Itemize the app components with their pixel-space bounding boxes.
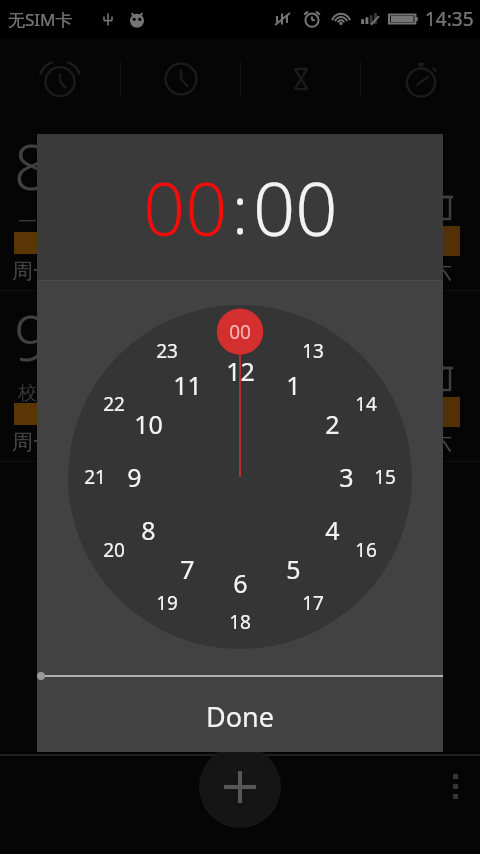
staticText: 18 [229,609,251,635]
staticText: 14:35 [425,6,474,32]
staticText: 9 [127,460,142,494]
button[interactable]: Clock [121,38,240,120]
staticText: 6 [233,566,248,600]
staticText: 15 [374,464,396,490]
button[interactable]: Done [37,680,443,752]
staticText: 1 [286,368,301,402]
button[interactable]: More options [447,768,464,805]
staticText: 11 [173,368,202,402]
button[interactable]: 9 [0,291,480,461]
staticText: 14 [355,391,377,417]
button[interactable]: 00 [253,157,338,258]
button[interactable]: Alarm [0,38,120,120]
staticText: 2 [325,407,340,441]
staticText: 一 [18,210,37,234]
staticText: 00 [229,319,251,345]
staticText: 校 [18,381,37,405]
staticText: : [232,163,249,253]
staticText: 4 [325,513,340,547]
staticText: 7 [180,552,195,586]
staticText: 5 [286,552,301,586]
button[interactable]: 8 [0,120,480,290]
staticText: 19 [156,590,178,616]
staticText: 16 [355,537,377,563]
staticText: Done [206,698,274,735]
staticText: 21 [84,464,106,490]
button[interactable]: Stopwatch [361,38,480,120]
staticText: 13 [302,338,324,364]
staticText: 23 [156,338,178,364]
staticText: 六 [431,258,452,284]
button[interactable]: Add alarm [199,746,281,828]
staticText: 无SIM卡 [8,8,73,31]
staticText: 12 [226,354,255,388]
staticText: 8 [141,513,156,547]
staticText: 周一 [12,258,54,284]
staticText: 3 [339,460,354,494]
staticText: 00 [143,157,228,258]
staticText: 9 [14,295,50,379]
staticText: 10 [134,407,163,441]
staticText: 20 [103,537,125,563]
button[interactable]: 00 [143,157,228,258]
button[interactable]: Clock face, hour selection [37,281,443,672]
staticText: 周一 [12,429,54,455]
staticText: 22 [103,391,125,417]
staticText: 00 [253,157,338,258]
staticText: 8 [14,124,50,208]
staticText: 17 [302,590,324,616]
staticText: 六 [431,429,452,455]
